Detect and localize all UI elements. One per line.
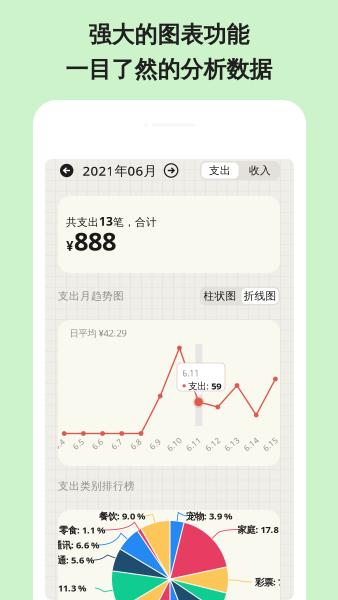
staticText: 支出: 59	[188, 380, 221, 392]
staticText: 6.8	[130, 439, 142, 449]
button[interactable]: Next month	[164, 164, 178, 177]
button[interactable]: 柱状图	[200, 286, 240, 305]
staticText: 6.11	[182, 368, 199, 379]
staticText: 一目了然的分析数据	[65, 55, 272, 83]
staticText: 宠物: 3.9 %	[186, 510, 232, 522]
staticText: 6.5	[72, 439, 84, 449]
staticText: 强大的图表功能	[88, 21, 249, 48]
staticText: 共支出13笔，合计	[66, 213, 157, 229]
staticText: 6.6	[92, 439, 104, 449]
staticText: 折线图	[243, 289, 276, 302]
staticText: 6.7	[111, 439, 123, 449]
staticText: 支出月趋势图	[58, 289, 124, 302]
staticText: 零食: 1.1 %	[59, 524, 105, 536]
staticText: 支出	[209, 164, 231, 177]
staticText: 6.4	[53, 439, 65, 449]
staticText: 彩票: 7	[255, 576, 283, 588]
button[interactable]: 支出	[200, 161, 240, 180]
staticText: 6.12	[204, 439, 221, 449]
button[interactable]: 折线图	[240, 286, 280, 305]
staticText: 柱状图	[203, 289, 236, 302]
staticText: ¥888	[66, 224, 116, 258]
staticText: 6.13	[223, 439, 240, 449]
staticText: 6.9	[149, 439, 161, 449]
staticText: 6.15	[262, 439, 279, 449]
staticText: 2021年06月	[82, 162, 156, 179]
staticText: 日平均 ¥42.29	[69, 327, 126, 339]
staticText: 家庭: 17.8 %	[237, 523, 288, 536]
staticText: 6.14	[243, 439, 260, 449]
button[interactable]: 收入	[240, 161, 280, 180]
staticText: 收入	[249, 164, 271, 177]
button[interactable]: Previous month	[60, 164, 73, 177]
staticText: 通讯: 6.6 %	[53, 539, 99, 551]
staticText: 6.10	[166, 439, 183, 449]
staticText: 11.3 %	[58, 582, 86, 594]
staticText: 餐饮: 9.0 %	[99, 510, 145, 522]
staticText: 6.11	[185, 439, 202, 449]
staticText: 交通: 5.6 %	[48, 554, 94, 566]
staticText: 支出类别排行榜	[58, 479, 135, 492]
